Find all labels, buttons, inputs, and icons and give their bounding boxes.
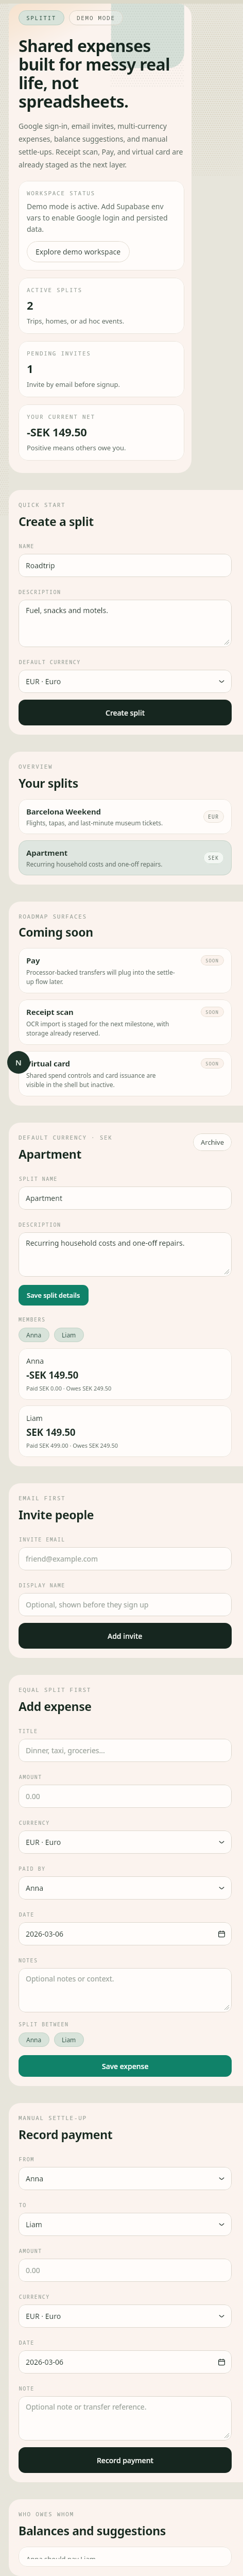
button[interactable]: Liam [19, 2213, 232, 2236]
staticText: MEMBERS [19, 1316, 46, 1323]
button[interactable]: Roadtrip [19, 554, 232, 577]
button[interactable]: Create split [19, 700, 232, 725]
staticText: Archive [201, 1138, 224, 1147]
staticText: SOON [205, 1009, 219, 1015]
staticText: friend@example.com [26, 1554, 98, 1564]
staticText: Add invite [108, 1631, 143, 1641]
button[interactable]: Liam [54, 1328, 84, 1342]
staticText: NOTE [19, 2385, 34, 2392]
button[interactable]: Barcelona Weekend [19, 799, 232, 834]
staticText: Liam [26, 2219, 42, 2229]
staticText: DATE [19, 1911, 34, 1918]
staticText: YOUR CURRENT NET [27, 413, 95, 420]
button[interactable]: Liam [54, 2032, 84, 2047]
button[interactable]: Optional note or transfer reference. [19, 2396, 232, 2441]
button[interactable]: Save expense [19, 2055, 232, 2077]
staticText: SOON [205, 957, 219, 963]
staticText: EUR · Euro [26, 2311, 61, 2321]
staticText: Flights, tapas, and last-minute museum t… [26, 819, 163, 827]
button[interactable]: Apartment [19, 840, 232, 875]
other: Open [218, 1885, 225, 1891]
staticText: Anna [26, 1356, 44, 1366]
button[interactable]: Recurring household costs and one-off re… [19, 1232, 232, 1277]
other: Pick date [218, 2359, 225, 2365]
staticText: Liam [62, 2036, 76, 2044]
button[interactable]: EUR · Euro [19, 670, 232, 693]
staticText: 0.00 [26, 1791, 40, 1801]
button[interactable]: Anna [19, 2167, 232, 2190]
button[interactable]: DEMO MODE [69, 10, 123, 25]
staticText: Apartment [26, 848, 68, 858]
button[interactable]: 2026-03-06 [19, 1922, 232, 1945]
staticText: Shared spend controls and card issuance … [26, 1071, 176, 1089]
staticText: SPLIT BETWEEN [19, 2021, 69, 2028]
button[interactable]: ACTIVE SPLITS [19, 278, 184, 334]
staticText: Add expense [19, 1698, 92, 1714]
staticText: Dinner, taxi, groceries... [26, 1745, 105, 1755]
button[interactable]: Anna [19, 1348, 232, 1400]
button[interactable]: WORKSPACE STATUS [19, 181, 184, 270]
button[interactable]: Record payment [19, 2447, 232, 2473]
staticText: EUR · Euro [26, 676, 61, 686]
staticText: Receipt scan [26, 1007, 74, 1017]
button[interactable]: 0.00 [19, 2259, 232, 2282]
staticText: Anna [26, 1883, 44, 1893]
other: Pick date [218, 1930, 225, 1937]
staticText: AMOUNT [19, 2247, 42, 2255]
button[interactable]: SPLITIT [19, 10, 64, 25]
button[interactable]: 0.00 [19, 1785, 232, 1808]
staticText: 1 [27, 361, 33, 376]
staticText: WORKSPACE STATUS [27, 189, 95, 197]
staticText: Optional notes or context. [26, 1974, 114, 1984]
button[interactable]: Anna [19, 1876, 232, 1900]
staticText: DESCRIPTION [19, 588, 61, 596]
button[interactable]: Explore demo workspace [27, 241, 130, 262]
staticText: 2026-03-06 [26, 1929, 64, 1939]
staticText: DESCRIPTION [19, 1221, 61, 1228]
button[interactable]: Archive [193, 1133, 232, 1151]
staticText: EUR · Euro [26, 1837, 61, 1847]
button[interactable]: Optional, shown before they sign up [19, 1593, 232, 1616]
staticText: Demo mode is active. Add Supabase env va… [27, 201, 176, 234]
button[interactable]: Dinner, taxi, groceries... [19, 1739, 232, 1762]
staticText: Save expense [102, 2061, 149, 2071]
staticText: Liam [26, 1413, 43, 1423]
staticText: DEFAULT CURRENCY [19, 658, 80, 666]
button[interactable]: Anna [19, 1328, 49, 1342]
staticText: MANUAL SETTLE-UP [19, 2114, 87, 2122]
button[interactable]: Anna should pay Liam [19, 2547, 232, 2567]
button[interactable]: Notifications [7, 1051, 30, 1074]
button[interactable]: EUR · Euro [19, 2304, 232, 2328]
button[interactable]: Liam [19, 1405, 232, 1457]
button[interactable]: Fuel, snacks and motels. [19, 600, 232, 647]
staticText: N [15, 1057, 22, 1067]
other: Open [218, 678, 225, 685]
button[interactable]: Anna [19, 2032, 49, 2047]
staticText: SEK 149.50 [26, 1426, 76, 1439]
staticText: Processor-backed transfers will plug int… [26, 968, 176, 986]
staticText: CURRENCY [19, 1819, 49, 1826]
staticText: Paid SEK 0.00 · Owes SEK 249.50 [26, 1384, 112, 1392]
staticText: SOON [205, 1060, 219, 1066]
staticText: Virtual card [26, 1058, 70, 1069]
button[interactable]: Apartment [19, 1187, 232, 1210]
button[interactable]: 2026-03-06 [19, 2350, 232, 2374]
staticText: PAID BY [19, 1865, 46, 1872]
button[interactable]: Save split details [19, 1285, 89, 1306]
staticText: EQUAL SPLIT FIRST [19, 1686, 92, 1693]
staticText: -SEK 149.50 [26, 1368, 79, 1382]
staticText: Roadtrip [26, 561, 55, 570]
staticText: 2 [27, 297, 33, 313]
button[interactable]: Pay [19, 948, 232, 993]
button[interactable]: Virtual card [19, 1051, 232, 1096]
button[interactable]: friend@example.com [19, 1547, 232, 1570]
button[interactable]: PENDING INVITES [19, 341, 184, 397]
staticText: Recurring household costs and one-off re… [26, 1238, 185, 1248]
button[interactable]: Add invite [19, 1623, 232, 1649]
staticText: Invite people [19, 1506, 94, 1522]
button[interactable]: Receipt scan [19, 999, 232, 1045]
button[interactable]: Optional notes or context. [19, 1968, 232, 2012]
button[interactable]: EUR · Euro [19, 1831, 232, 1854]
staticText: DEMO MODE [77, 14, 115, 22]
button[interactable]: YOUR CURRENT NET [19, 404, 184, 461]
